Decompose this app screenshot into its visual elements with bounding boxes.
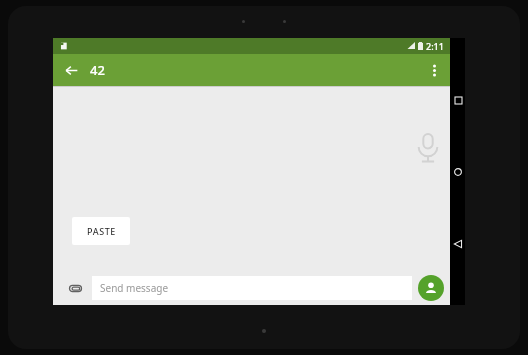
button[interactable]: Navigate up [61,60,81,80]
button[interactable]: More options [424,60,444,80]
staticText: Send message [100,281,169,295]
button[interactable]: Home [451,165,465,179]
button[interactable]: Voice input [410,129,446,165]
button[interactable]: Attach [65,278,85,298]
staticText: 2:11 [426,40,444,52]
staticText: PASTE [87,225,116,237]
button[interactable]: PASTE [72,217,130,245]
button[interactable]: Back [451,237,465,251]
staticText: 42 [90,61,105,79]
button[interactable]: Send [418,275,444,301]
button[interactable]: Recent apps [451,93,465,107]
button[interactable]: Send message [92,276,412,300]
